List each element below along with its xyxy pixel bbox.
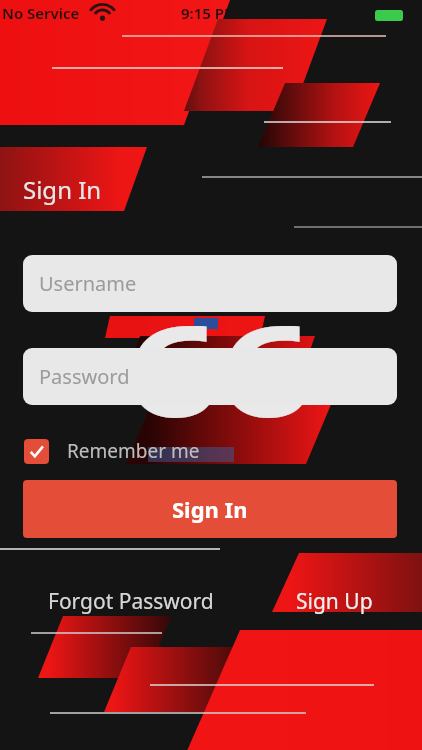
button[interactable]: Sign Up [288,584,381,619]
staticText: Password [39,363,130,390]
staticText: Sign In [172,494,248,524]
staticText: No Service [2,3,80,23]
button[interactable]: Remember me [24,437,200,465]
staticText: Username [39,270,137,297]
staticText: Remember me [67,438,200,464]
button[interactable]: Password [23,348,397,405]
staticText: 66 [127,283,313,453]
staticText: Sign In [23,173,102,206]
button[interactable]: Username [23,255,397,312]
button[interactable]: Sign In [23,480,397,538]
staticText: Forgot Password [48,587,214,616]
button[interactable]: Forgot Password [40,584,222,619]
staticText: Sign Up [296,587,373,616]
other: Wi-Fi [94,7,111,20]
staticText: 9:15 PM [181,3,238,23]
